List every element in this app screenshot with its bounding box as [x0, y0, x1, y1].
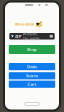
staticText: WoosBee: [15, 21, 34, 27]
button[interactable]: Deals: [9, 63, 55, 70]
button[interactable]: ZIP: [9, 33, 55, 39]
staticText: ZIP: [15, 34, 21, 39]
button[interactable]: Stores: [9, 72, 55, 79]
staticText: Shop: [27, 47, 37, 52]
staticText: Wooster, OH 44691: [22, 31, 39, 41]
staticText: Cart: [27, 81, 36, 87]
staticText: Stores: [26, 73, 38, 78]
button[interactable]: Shop: [9, 45, 55, 54]
button[interactable]: Cart: [9, 81, 55, 88]
staticText: Deals: [27, 64, 37, 69]
